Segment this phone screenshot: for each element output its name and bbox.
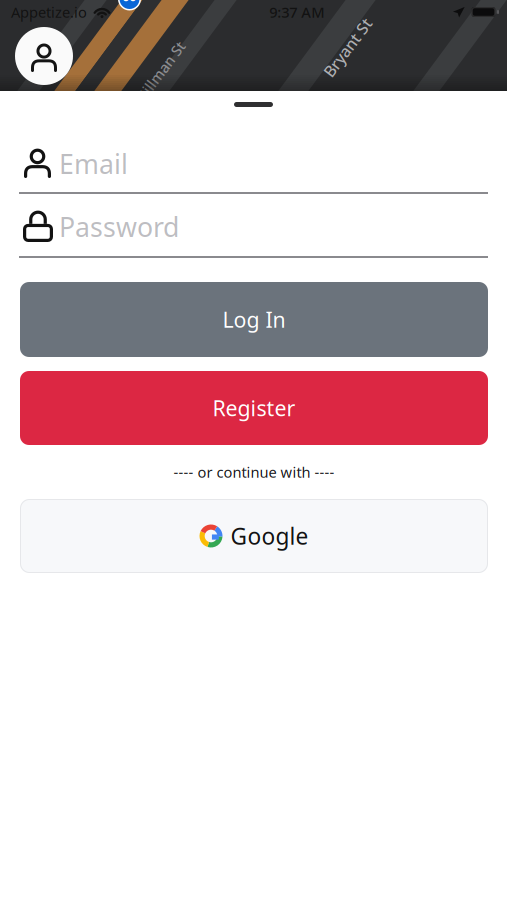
staticText: Password (59, 209, 179, 244)
staticText: Gillman St (124, 62, 196, 81)
staticText: Bryant St (313, 37, 382, 58)
button[interactable]: Log In (20, 282, 488, 357)
staticText: ---- or continue with ---- (173, 462, 334, 482)
button[interactable]: Register (20, 371, 488, 445)
staticText: Google (230, 521, 308, 551)
button[interactable]: Profile (15, 27, 73, 85)
staticText: Log In (222, 305, 285, 334)
staticText: Email (59, 146, 128, 181)
button[interactable]: Google (20, 499, 488, 573)
staticText: 9:37 AM (269, 2, 324, 22)
staticText: Appetize.io (11, 2, 87, 22)
staticText: Register (212, 394, 295, 422)
staticText: oo (122, 0, 136, 4)
